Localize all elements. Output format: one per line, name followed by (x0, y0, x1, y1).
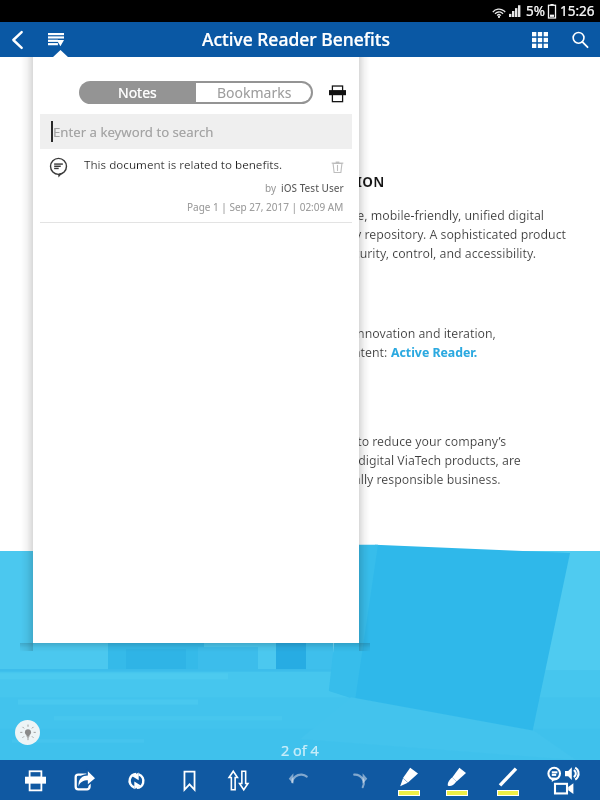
staticText: Bookmarks (217, 83, 292, 102)
button[interactable]: Pen (492, 760, 524, 800)
staticText: carbon footprint. Active Reader, as well… (64, 452, 521, 469)
staticText: by (265, 181, 277, 195)
button[interactable]: Notes (79, 81, 196, 104)
staticText: intended to help you run a more environm… (89, 471, 501, 488)
staticText: Page 1 | Sep 27, 2017 | 02:09 AM (187, 200, 344, 214)
button[interactable]: Media notes (539, 760, 587, 800)
staticText: Active Reader Benefits (202, 27, 390, 51)
button[interactable]: This document is related to benefits. (33, 149, 359, 223)
staticText: 5% (526, 2, 545, 20)
button[interactable]: Scroll mode (222, 760, 254, 800)
staticText: 2 of 4 (281, 740, 319, 760)
staticText: Enter a keyword to search (53, 123, 214, 141)
staticText: INTRODUCTION (274, 173, 385, 191)
button[interactable]: Brightness (15, 720, 40, 745)
button[interactable]: Sync (120, 760, 152, 800)
button[interactable]: Search (563, 23, 596, 56)
staticText: Active Reader is designed from the groun… (89, 433, 507, 450)
button[interactable]: Print (19, 760, 51, 800)
staticText: we proudly present our newest content: (157, 344, 391, 361)
staticText: Active Reader. (391, 344, 478, 361)
button[interactable]: Redo (339, 760, 371, 800)
button[interactable]: Enter a keyword to search (40, 114, 352, 149)
button[interactable]: Bookmarks (196, 81, 313, 104)
staticText: publishing and distribution content libr… (117, 226, 566, 243)
staticText: ViaTech offers a secure, mobile-friendly… (232, 207, 544, 224)
button[interactable]: Bookmark (173, 760, 205, 800)
button[interactable]: Back (1, 23, 34, 56)
staticText: Notes (118, 83, 157, 102)
button[interactable]: Brush (441, 760, 473, 800)
staticText: iOS Test User (281, 181, 344, 195)
staticText: Built on over 30 years of innovation and… (211, 325, 496, 342)
button[interactable]: Grid view (523, 23, 556, 56)
button[interactable]: Outline (39, 23, 72, 56)
button[interactable]: Print (325, 81, 349, 105)
staticText: suite designed to give you total securit… (157, 245, 536, 262)
button[interactable]: Undo (284, 760, 316, 800)
button[interactable]: Highlighter (393, 760, 425, 800)
staticText: This document is related to benefits. (84, 157, 331, 173)
staticText: 15:26 (560, 2, 595, 20)
button[interactable]: Share (68, 760, 100, 800)
